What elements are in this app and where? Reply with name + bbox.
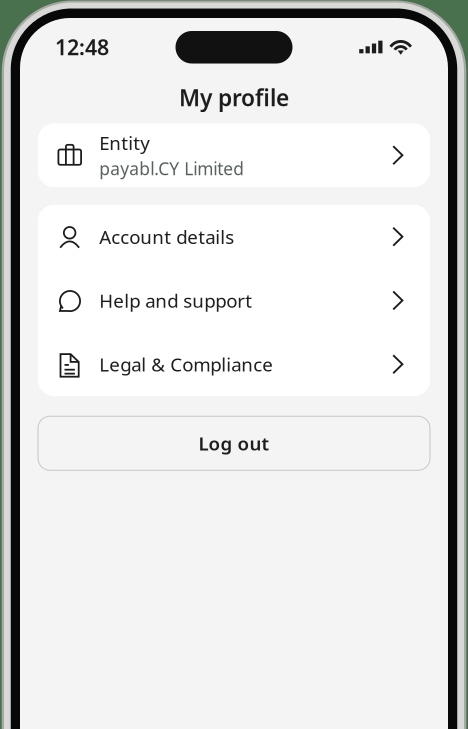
staticText: Legal & Compliance	[99, 352, 273, 377]
staticText: My profile	[179, 82, 289, 113]
staticText: payabl.CY Limited	[99, 157, 244, 180]
staticText: Help and support	[99, 288, 252, 313]
button[interactable]: Help and support	[38, 269, 430, 332]
button[interactable]: Account details	[38, 205, 430, 269]
button[interactable]: Log out	[38, 416, 430, 470]
staticText: Account details	[99, 224, 234, 249]
button[interactable]: Legal & Compliance	[38, 332, 430, 396]
button[interactable]: Entity	[38, 123, 430, 187]
staticText: Log out	[198, 431, 269, 456]
staticText: 12:48	[55, 33, 109, 61]
staticText: Entity	[99, 130, 150, 155]
